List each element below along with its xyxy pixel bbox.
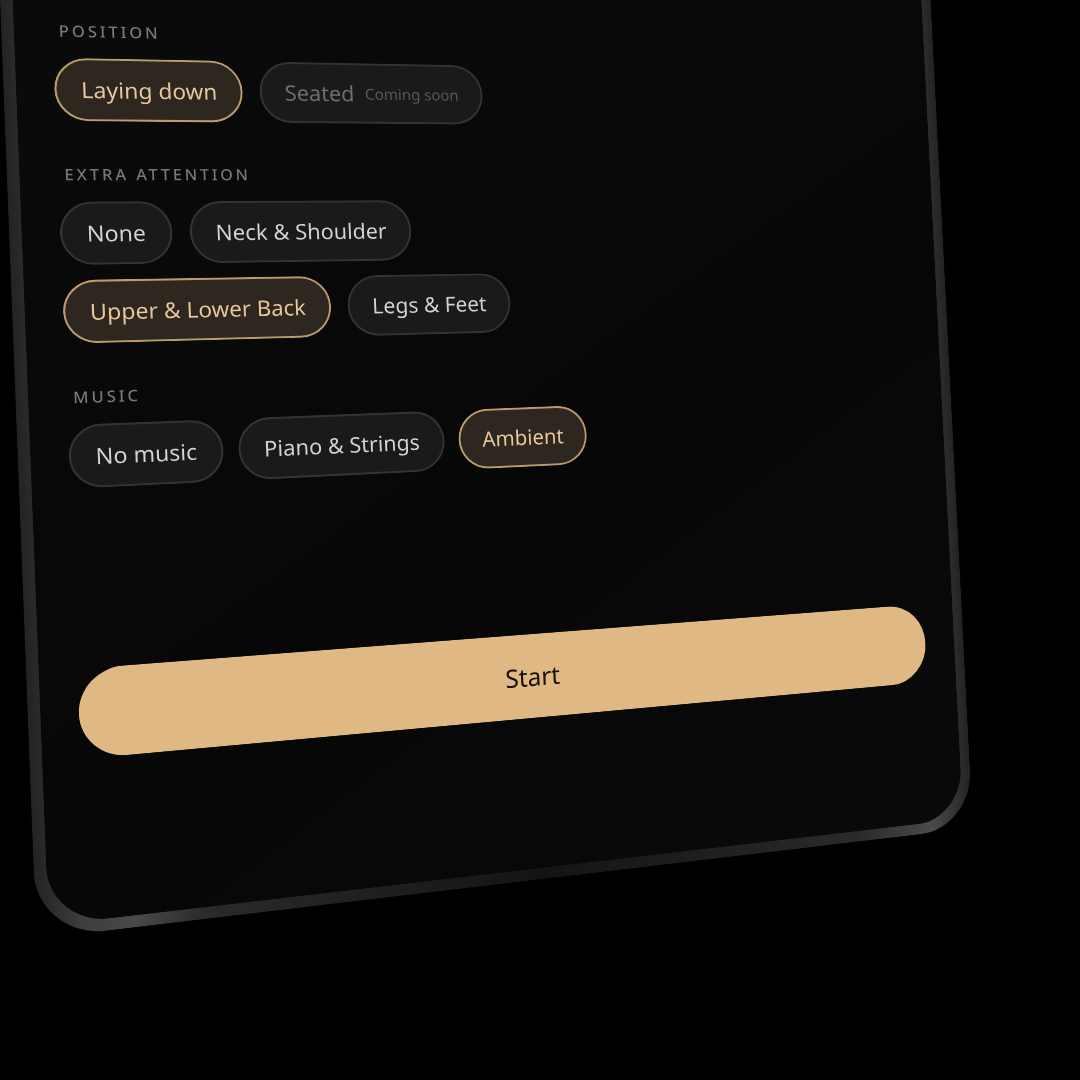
staticText: Ambient	[482, 421, 564, 454]
button[interactable]: Legs & Feet	[346, 273, 512, 336]
staticText: POSITION	[58, 20, 162, 43]
staticText: Coming soon	[364, 83, 459, 105]
button[interactable]: No music	[67, 419, 225, 489]
button[interactable]: None	[59, 201, 174, 265]
staticText: Legs & Feet	[371, 289, 488, 321]
button[interactable]: Upper & Lower Back	[62, 276, 332, 344]
staticText: EXTRA ATTENTION	[64, 163, 252, 185]
button[interactable]: Neck & Shoulder	[188, 200, 413, 263]
staticText: No music	[95, 437, 198, 472]
staticText: Upper & Lower Back	[89, 292, 307, 327]
staticText: Neck & Shoulder	[215, 216, 388, 247]
button[interactable]: Piano & Strings	[237, 410, 446, 481]
staticText: Seated	[284, 78, 355, 109]
button[interactable]: Start	[77, 604, 927, 759]
button[interactable]: Seated	[258, 61, 484, 125]
staticText: MUSIC	[73, 384, 141, 408]
staticText: Laying down	[80, 75, 218, 107]
staticText: Start	[504, 657, 561, 695]
button[interactable]: Ambient	[457, 405, 588, 470]
button[interactable]: Laying down	[53, 58, 244, 123]
staticText: None	[86, 218, 147, 249]
staticText: Piano & Strings	[263, 427, 421, 464]
